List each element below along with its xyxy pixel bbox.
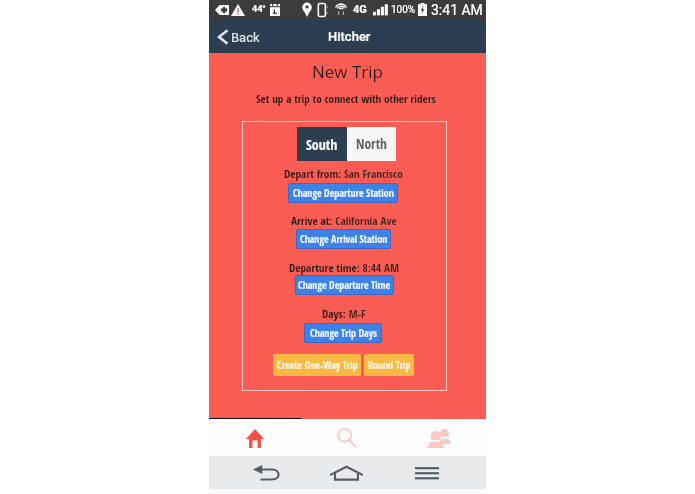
staticText: Change Departure Time (298, 278, 391, 292)
button[interactable]: Back (235, 456, 299, 489)
staticText: New Trip (312, 60, 383, 83)
staticText: 100% (391, 4, 416, 16)
button[interactable]: People (394, 419, 486, 456)
staticText: Hitcher (328, 29, 371, 44)
staticText: Change Arrival Station (300, 232, 388, 246)
staticText: Depart from: San Francisco (284, 166, 403, 181)
button[interactable]: Change Trip Days (304, 323, 382, 343)
staticText: North (356, 135, 387, 153)
staticText: Departure time: 8:44 AM (289, 260, 399, 275)
button[interactable]: Change Arrival Station (296, 229, 391, 249)
staticText: Days: M-F (322, 306, 366, 321)
button[interactable]: Round Trip (364, 354, 414, 376)
button[interactable]: Home (209, 419, 302, 456)
button[interactable]: Search (302, 419, 394, 456)
button[interactable]: Create One-Way Trip (273, 354, 361, 376)
staticText: 3:41 AM (431, 2, 483, 18)
staticText: Create One-Way Trip (277, 358, 358, 372)
staticText: Change Trip Days (310, 326, 377, 340)
staticText: Back (231, 30, 260, 45)
button[interactable]: North (347, 127, 396, 161)
staticText: Arrive at: California Ave (291, 213, 397, 228)
button[interactable]: Menu (395, 456, 459, 489)
button[interactable]: Change Departure Time (295, 275, 394, 295)
staticText: South (306, 135, 338, 154)
button[interactable]: Change Departure Station (288, 183, 398, 203)
button[interactable]: Home (314, 456, 378, 489)
staticText: Change Departure Station (293, 186, 394, 200)
staticText: Round Trip (368, 358, 411, 372)
button[interactable]: South (297, 127, 347, 161)
staticText: 44° (252, 4, 266, 15)
button[interactable]: Back (209, 24, 268, 50)
staticText: 4G (353, 3, 367, 16)
staticText: Set up a trip to connect with other ride… (256, 91, 436, 106)
